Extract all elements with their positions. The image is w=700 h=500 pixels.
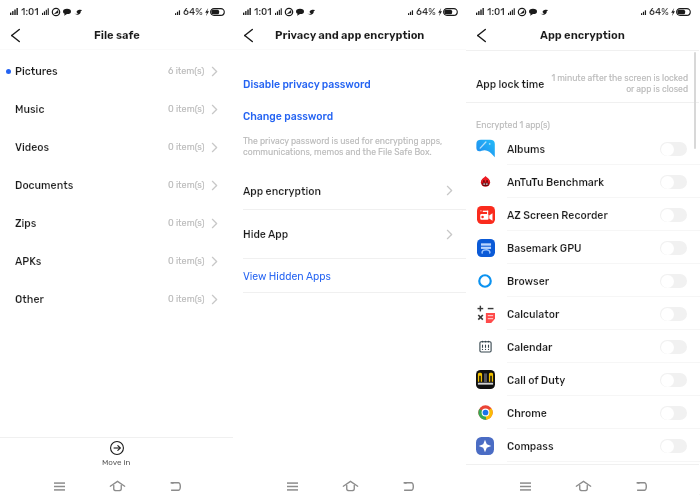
button[interactable]: Back <box>240 27 257 44</box>
button[interactable]: Hide App <box>233 210 466 258</box>
button[interactable]: Toggle encryption <box>660 208 687 222</box>
staticText: 1:01 <box>21 6 39 17</box>
button[interactable]: Back <box>393 471 423 500</box>
staticText: Basemark GPU <box>507 242 582 254</box>
button[interactable]: Browser <box>466 264 699 297</box>
button[interactable]: Chrome <box>466 396 699 429</box>
staticText: Disable privacy password <box>243 78 371 90</box>
button[interactable]: Toggle encryption <box>660 142 687 156</box>
staticText: App lock time <box>476 78 545 90</box>
button[interactable]: Home <box>335 471 365 500</box>
button[interactable]: Call of Duty <box>466 363 699 396</box>
button[interactable]: Calculator <box>466 297 699 330</box>
button[interactable]: AnTuTu Benchmark <box>466 165 699 198</box>
button[interactable]: Back <box>7 27 24 44</box>
button[interactable]: Recents <box>277 471 307 500</box>
button[interactable]: Back <box>160 471 190 500</box>
staticText: 1 minute after the screen is locked or a… <box>542 73 688 94</box>
staticText: Documents <box>15 179 74 191</box>
button[interactable]: Toggle encryption <box>660 373 687 387</box>
button[interactable]: Toggle encryption <box>660 439 687 453</box>
staticText: 1:01 <box>254 6 272 17</box>
button[interactable]: Recents <box>510 471 540 500</box>
button[interactable]: Zips <box>0 204 233 242</box>
button[interactable]: Compass <box>466 429 699 462</box>
staticText: 64% <box>183 6 203 17</box>
button[interactable]: Recents <box>44 471 74 500</box>
staticText: Music <box>15 103 45 115</box>
button[interactable]: Toggle encryption <box>660 340 687 354</box>
staticText: Pictures <box>15 65 58 77</box>
button[interactable]: Videos <box>0 128 233 166</box>
staticText: View Hidden Apps <box>243 270 331 282</box>
staticText: 0 item(s) <box>168 180 205 191</box>
staticText: Albums <box>507 143 546 155</box>
staticText: 0 item(s) <box>168 294 205 305</box>
button[interactable]: Disable privacy password <box>233 70 466 98</box>
button[interactable]: Toggle encryption <box>466 462 699 495</box>
button[interactable]: Move in <box>0 438 233 464</box>
button[interactable]: Basemark GPU <box>466 231 699 264</box>
staticText: Privacy and app encryption <box>275 29 425 42</box>
button[interactable]: Back <box>473 27 490 44</box>
staticText: Calculator <box>507 308 560 320</box>
button[interactable]: Home <box>568 471 598 500</box>
button[interactable]: App encryption <box>233 171 466 210</box>
button[interactable]: Change password <box>233 102 466 130</box>
button[interactable]: Calendar <box>466 330 699 363</box>
staticText: 6 item(s) <box>168 66 205 77</box>
staticText: App encryption <box>243 185 322 197</box>
staticText: The privacy password is used for encrypt… <box>243 136 455 157</box>
staticText: File safe <box>94 29 140 42</box>
button[interactable]: Toggle encryption <box>660 274 687 288</box>
staticText: Call of Duty <box>507 374 566 386</box>
button[interactable]: App lock time <box>466 51 699 102</box>
staticText: 0 item(s) <box>168 256 205 267</box>
staticText: APKs <box>15 255 42 267</box>
button[interactable]: Back <box>626 471 656 500</box>
staticText: 64% <box>416 6 436 17</box>
staticText: Other <box>15 293 44 305</box>
button[interactable]: Documents <box>0 166 233 204</box>
staticText: 1:01 <box>487 6 505 17</box>
button[interactable]: Toggle encryption <box>660 241 687 255</box>
button[interactable]: Toggle encryption <box>660 175 687 189</box>
button[interactable]: View Hidden Apps <box>233 259 466 292</box>
button[interactable]: Toggle encryption <box>660 406 687 420</box>
button[interactable]: AZ Screen Recorder <box>466 198 699 231</box>
staticText: AZ Screen Recorder <box>507 209 608 221</box>
staticText: Videos <box>15 141 50 153</box>
staticText: Compass <box>507 440 554 452</box>
staticText: 0 item(s) <box>168 142 205 153</box>
staticText: Browser <box>507 275 550 287</box>
staticText: Calendar <box>507 341 553 353</box>
staticText: Zips <box>15 217 37 229</box>
staticText: Encrypted 1 app(s) <box>476 120 550 130</box>
button[interactable]: Albums <box>466 132 699 165</box>
button[interactable]: Other <box>0 280 233 318</box>
staticText: Chrome <box>507 407 547 419</box>
button[interactable]: Toggle encryption <box>660 307 687 321</box>
staticText: Hide App <box>243 228 289 240</box>
staticText: Change password <box>243 110 334 122</box>
staticText: 64% <box>649 6 669 17</box>
button[interactable]: Home <box>102 471 132 500</box>
staticText: AnTuTu Benchmark <box>507 176 604 188</box>
staticText: 0 item(s) <box>168 104 205 115</box>
button[interactable]: APKs <box>0 242 233 280</box>
button[interactable]: Music <box>0 90 233 128</box>
button[interactable]: Pictures <box>0 52 233 90</box>
staticText: Move in <box>102 458 131 467</box>
staticText: App encryption <box>540 29 625 42</box>
staticText: 0 item(s) <box>168 218 205 229</box>
